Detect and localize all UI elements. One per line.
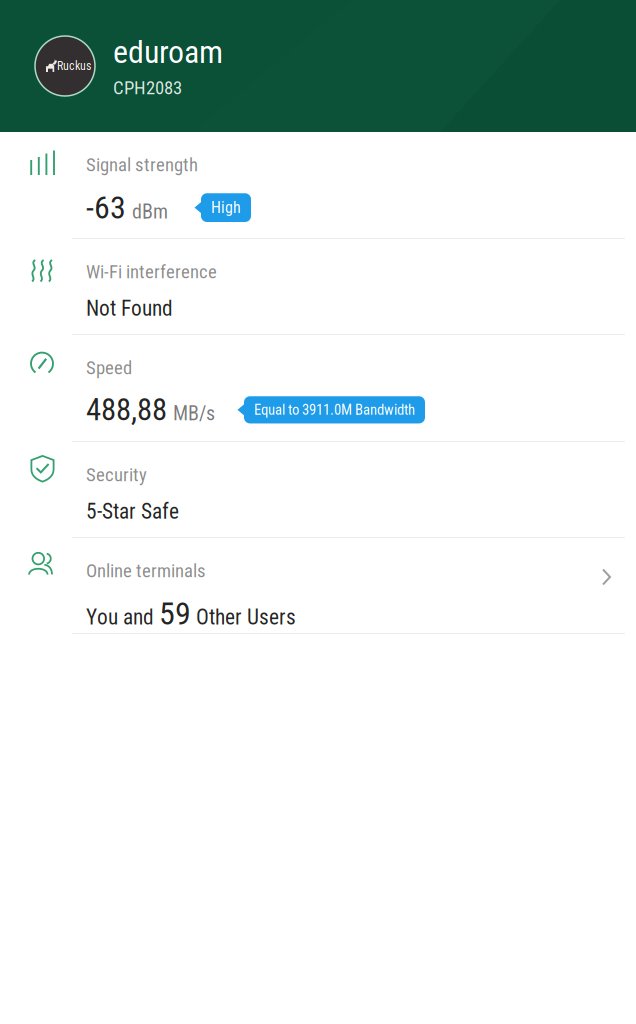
staticText: Other Users — [191, 605, 296, 630]
staticText: CPH2083 — [113, 77, 182, 99]
staticText: Security — [86, 464, 147, 486]
staticText: 5-Star Safe — [86, 499, 179, 524]
staticText: Speed — [86, 357, 132, 379]
staticText: Ruckus — [57, 59, 91, 73]
staticText: High — [211, 198, 241, 217]
staticText: Not Found — [86, 296, 173, 321]
staticText: You and — [86, 605, 159, 630]
staticText: 59 — [159, 595, 191, 632]
staticText: eduroam — [113, 33, 223, 71]
staticText: Wi-Fi interference — [86, 261, 217, 283]
staticText: dBm — [132, 200, 168, 223]
staticText: MB/s — [173, 402, 215, 425]
staticText: 488,88 — [86, 392, 167, 428]
staticText: Signal strength — [86, 154, 198, 176]
staticText: Equal to 3911.0M Bandwidth — [254, 401, 415, 418]
staticText: -63 — [86, 189, 126, 226]
staticText: Online terminals — [86, 560, 206, 582]
